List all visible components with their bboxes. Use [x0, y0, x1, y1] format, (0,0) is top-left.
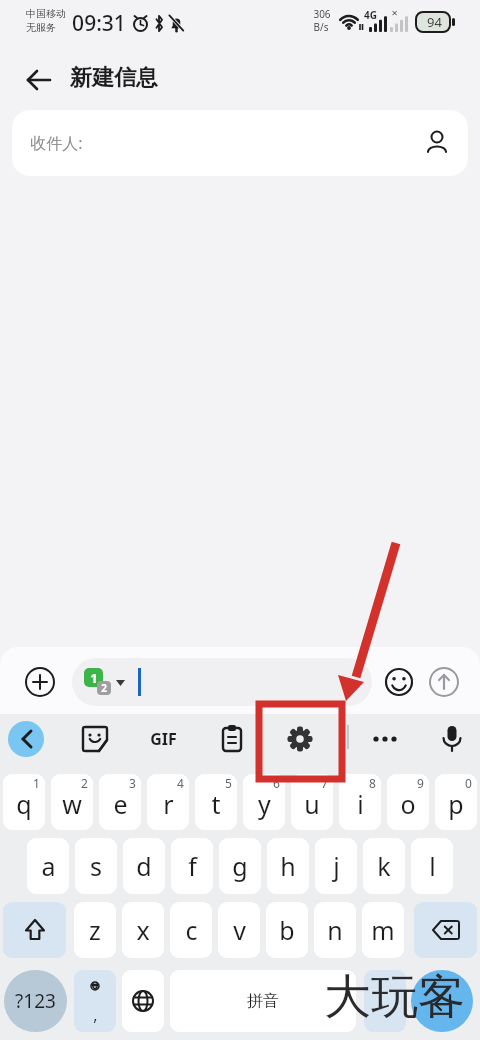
button[interactable]: r — [147, 774, 189, 830]
staticText: j — [333, 849, 340, 883]
button[interactable] — [22, 62, 58, 98]
staticText: 7 — [321, 775, 328, 791]
staticText: 2 — [81, 775, 88, 791]
button[interactable]: s — [75, 838, 117, 894]
staticText: k — [377, 849, 391, 883]
staticText: l — [429, 849, 436, 883]
staticText: 新建信息 — [70, 64, 158, 92]
button[interactable]: m — [362, 902, 404, 958]
staticText: t — [211, 787, 221, 821]
button[interactable] — [122, 970, 164, 1032]
button[interactable] — [383, 666, 415, 698]
button[interactable]: g — [219, 838, 261, 894]
staticText: s — [90, 849, 102, 883]
button[interactable]: GIF — [140, 722, 186, 756]
staticText: e — [113, 787, 128, 821]
button[interactable]: k — [363, 838, 405, 894]
button[interactable] — [215, 722, 249, 756]
staticText: o — [400, 787, 416, 821]
staticText: 中国移动 — [26, 7, 66, 20]
button[interactable] — [428, 666, 460, 698]
button[interactable] — [78, 722, 112, 756]
staticText: 9 — [417, 775, 424, 791]
staticText: 。 — [378, 992, 393, 1011]
button[interactable]: v — [218, 902, 260, 958]
staticText: u — [304, 787, 320, 821]
button[interactable]: h — [267, 838, 309, 894]
button[interactable]: p — [435, 774, 477, 830]
staticText: f — [188, 849, 197, 883]
staticText: h — [280, 849, 296, 883]
button[interactable]: u — [291, 774, 333, 830]
staticText: 拼音 — [247, 991, 279, 1011]
button[interactable] — [411, 970, 473, 1032]
button[interactable]: y — [243, 774, 285, 830]
staticText: 09:31 — [72, 9, 126, 38]
button[interactable]: q — [3, 774, 45, 830]
button[interactable]: f — [171, 838, 213, 894]
button[interactable]: t — [195, 774, 237, 830]
button[interactable] — [435, 722, 469, 756]
staticText: 2 — [101, 681, 107, 695]
staticText: a — [41, 849, 56, 883]
staticText: 3 — [129, 775, 136, 791]
button[interactable]: l — [411, 838, 453, 894]
staticText: ✕ — [391, 9, 398, 18]
staticText: GIF — [150, 728, 177, 750]
staticText: v — [233, 913, 246, 947]
staticText: m — [371, 913, 395, 947]
staticText: 无服务 — [26, 21, 56, 34]
staticText: 8 — [369, 775, 376, 791]
staticText: 大玩客 — [324, 968, 465, 1026]
staticText: c — [185, 913, 198, 947]
button[interactable] — [414, 902, 477, 958]
button[interactable]: o — [387, 774, 429, 830]
staticText: 6 — [273, 775, 280, 791]
button[interactable] — [24, 666, 56, 698]
staticText: b — [279, 913, 295, 947]
button[interactable] — [283, 722, 317, 756]
button[interactable]: j — [315, 838, 357, 894]
button[interactable]: e — [99, 774, 141, 830]
staticText: r — [163, 787, 174, 821]
staticText: 5 — [225, 775, 232, 791]
button[interactable] — [3, 902, 66, 958]
button[interactable]: , — [74, 970, 116, 1032]
button[interactable] — [368, 722, 402, 756]
button[interactable]: x — [122, 902, 164, 958]
staticText: 1 — [90, 669, 98, 687]
staticText: q — [16, 787, 32, 821]
staticText: z — [89, 913, 101, 947]
staticText: 4G — [364, 8, 377, 21]
staticText: 4 — [177, 775, 184, 791]
button[interactable]: i — [339, 774, 381, 830]
staticText: g — [232, 849, 248, 883]
button[interactable]: c — [170, 902, 212, 958]
staticText: 94 — [427, 13, 442, 31]
staticText: y — [258, 787, 271, 821]
staticText: p — [448, 787, 464, 821]
staticText: 收件人: — [30, 132, 83, 154]
staticText: x — [136, 913, 150, 947]
button[interactable]: b — [266, 902, 308, 958]
staticText: , — [93, 1004, 98, 1026]
button[interactable] — [8, 721, 44, 757]
staticText: ?123 — [15, 988, 56, 1014]
button[interactable]: 1 — [72, 658, 372, 706]
staticText: d — [136, 849, 152, 883]
button[interactable]: z — [74, 902, 116, 958]
staticText: 306 — [313, 7, 331, 21]
staticText: 1 — [33, 775, 40, 791]
staticText: i — [357, 787, 364, 821]
button[interactable]: 拼音 — [170, 970, 356, 1032]
button[interactable]: d — [123, 838, 165, 894]
button[interactable]: a — [27, 838, 69, 894]
button[interactable]: 。 — [364, 970, 406, 1032]
staticText: n — [327, 913, 343, 947]
staticText: B/s — [313, 20, 329, 34]
staticText: w — [62, 787, 82, 821]
button[interactable]: w — [51, 774, 93, 830]
button[interactable]: ?123 — [4, 970, 67, 1032]
button[interactable]: n — [314, 902, 356, 958]
button[interactable]: 收件人: — [12, 110, 468, 176]
